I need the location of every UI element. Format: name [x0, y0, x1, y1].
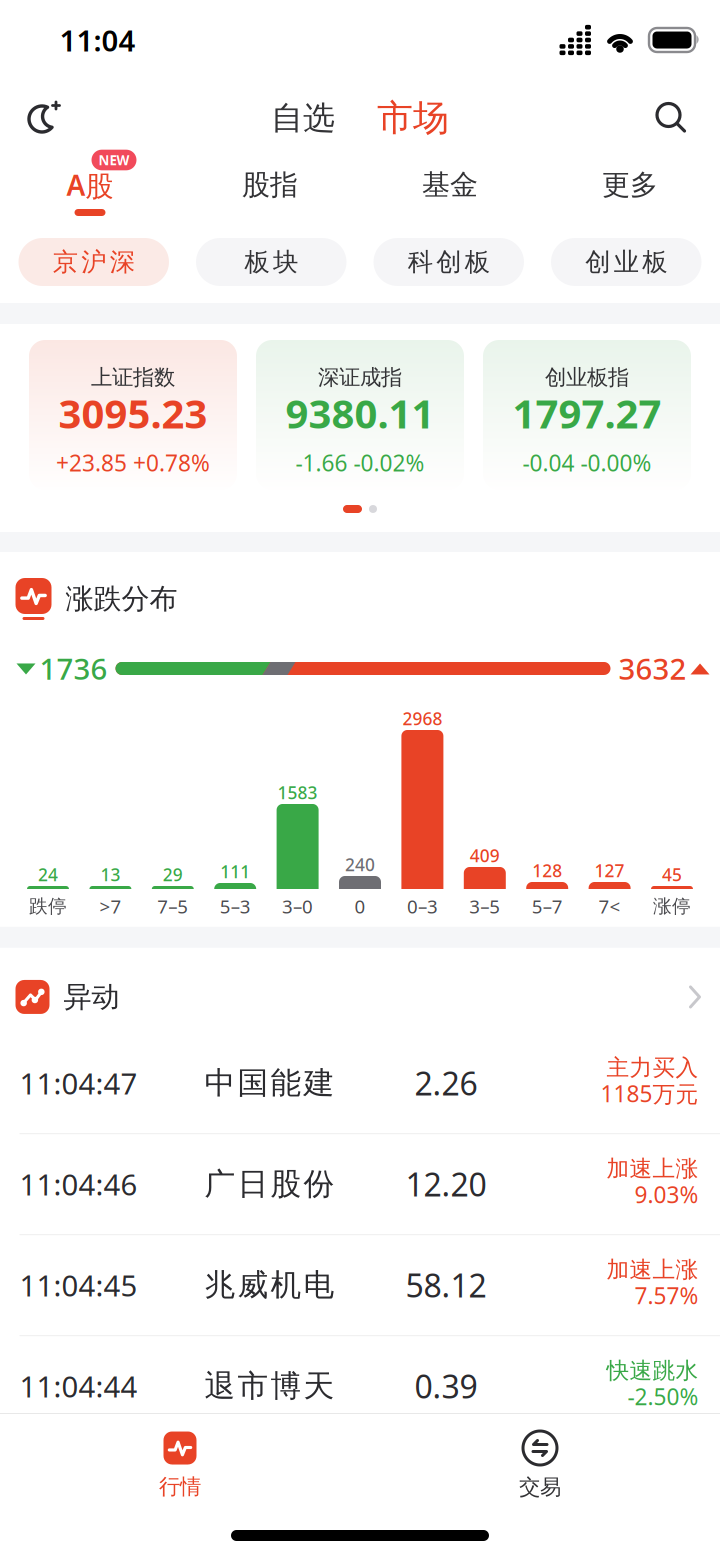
staticText: 更多: [602, 168, 658, 202]
staticText: 创业板: [585, 246, 667, 277]
button[interactable]: 搜索: [654, 87, 720, 147]
staticText: -0.04 -0.00%: [522, 448, 651, 478]
staticText: 1185万元: [600, 1078, 698, 1109]
staticText: 涨跌分布: [65, 582, 177, 616]
staticText: 11:04:45: [19, 1266, 137, 1305]
staticText: 兆威机电: [204, 1266, 334, 1304]
staticText: 58.12: [405, 1264, 486, 1306]
button[interactable]: 交易: [360, 1431, 720, 1500]
staticText: 3–5: [469, 894, 500, 919]
staticText: 退市博天: [204, 1367, 334, 1405]
staticText: 自选: [271, 98, 335, 138]
staticText: 3–0: [282, 894, 313, 919]
staticText: 跌停: [29, 895, 67, 918]
staticText: +23.85 +0.78%: [56, 448, 210, 478]
staticText: 2968: [402, 707, 442, 730]
staticText: 市场: [377, 96, 449, 140]
staticText: 上证指数: [91, 364, 175, 390]
staticText: 45: [662, 863, 682, 886]
staticText: 3095.23: [58, 386, 207, 440]
button[interactable]: 11:04:44: [0, 1336, 720, 1436]
staticText: 11:04: [59, 20, 135, 59]
staticText: 29: [163, 863, 183, 886]
staticText: >7: [99, 894, 121, 919]
button[interactable]: 异动: [0, 980, 720, 1014]
staticText: 11:04:44: [19, 1367, 137, 1406]
staticText: 9380.11: [285, 386, 434, 440]
staticText: 0.39: [414, 1365, 477, 1407]
staticText: 基金: [422, 168, 478, 202]
button[interactable]: 自选: [271, 98, 335, 138]
staticText: 0: [354, 894, 365, 919]
staticText: 2.26: [414, 1062, 477, 1104]
button[interactable]: 创业板指: [483, 340, 691, 490]
button[interactable]: 行情: [0, 1431, 360, 1500]
staticText: 13: [100, 863, 120, 886]
staticText: 24: [38, 863, 58, 886]
staticText: 科创板: [408, 246, 490, 277]
button[interactable]: 京沪深: [18, 238, 169, 286]
staticText: 股指: [242, 168, 298, 202]
staticText: 1797.27: [512, 386, 661, 440]
staticText: 深证成指: [318, 364, 402, 390]
staticText: -2.50%: [627, 1381, 698, 1412]
button[interactable]: 夜间模式: [0, 86, 61, 148]
staticText: 广日股份: [204, 1165, 334, 1203]
button[interactable]: 11:04:47: [0, 1033, 720, 1133]
staticText: 涨停: [653, 895, 691, 918]
staticText: 127: [595, 859, 625, 882]
staticText: 11:04:46: [19, 1165, 137, 1204]
staticText: 11:04:47: [19, 1064, 137, 1103]
staticText: -1.66 -0.02%: [295, 448, 424, 478]
button[interactable]: 科创板: [373, 238, 524, 286]
button[interactable]: 深证成指: [256, 340, 464, 490]
staticText: 5–7: [532, 894, 563, 919]
staticText: 板块: [244, 246, 298, 277]
staticText: 快速跳水: [606, 1357, 698, 1384]
staticText: 加速上涨: [606, 1256, 698, 1283]
staticText: 9.03%: [634, 1179, 698, 1210]
button[interactable]: 基金: [360, 183, 540, 217]
staticText: A股: [66, 166, 113, 204]
staticText: 409: [470, 844, 500, 867]
staticText: 行情: [159, 1473, 201, 1500]
staticText: 7.57%: [634, 1280, 698, 1311]
staticText: 0–3: [407, 894, 438, 919]
staticText: 5–3: [220, 894, 251, 919]
button[interactable]: 11:04:45: [0, 1235, 720, 1335]
staticText: 京沪深: [53, 246, 135, 277]
staticText: 中国能建: [204, 1064, 334, 1102]
button[interactable]: 上证指数: [29, 340, 237, 490]
staticText: 1736: [39, 649, 107, 688]
staticText: 240: [345, 853, 375, 876]
staticText: 128: [532, 859, 562, 882]
staticText: 3632: [618, 649, 686, 688]
staticText: 111: [220, 860, 250, 883]
staticText: 主力买入: [606, 1054, 698, 1081]
button[interactable]: 市场: [377, 96, 449, 140]
button[interactable]: 股指: [180, 183, 360, 217]
staticText: 7–5: [157, 894, 188, 919]
button[interactable]: 创业板: [551, 238, 701, 286]
staticText: 异动: [63, 980, 119, 1014]
staticText: 7<: [599, 894, 621, 919]
staticText: 加速上涨: [606, 1155, 698, 1182]
button[interactable]: 更多: [540, 183, 720, 217]
button[interactable]: 11:04:46: [0, 1134, 720, 1234]
staticText: 12.20: [405, 1163, 486, 1205]
button[interactable]: 板块: [196, 238, 346, 286]
staticText: NEW: [98, 151, 129, 169]
staticText: 创业板指: [545, 364, 629, 390]
button[interactable]: A股: [0, 162, 180, 238]
staticText: 交易: [519, 1474, 561, 1500]
staticText: 1583: [278, 781, 318, 804]
